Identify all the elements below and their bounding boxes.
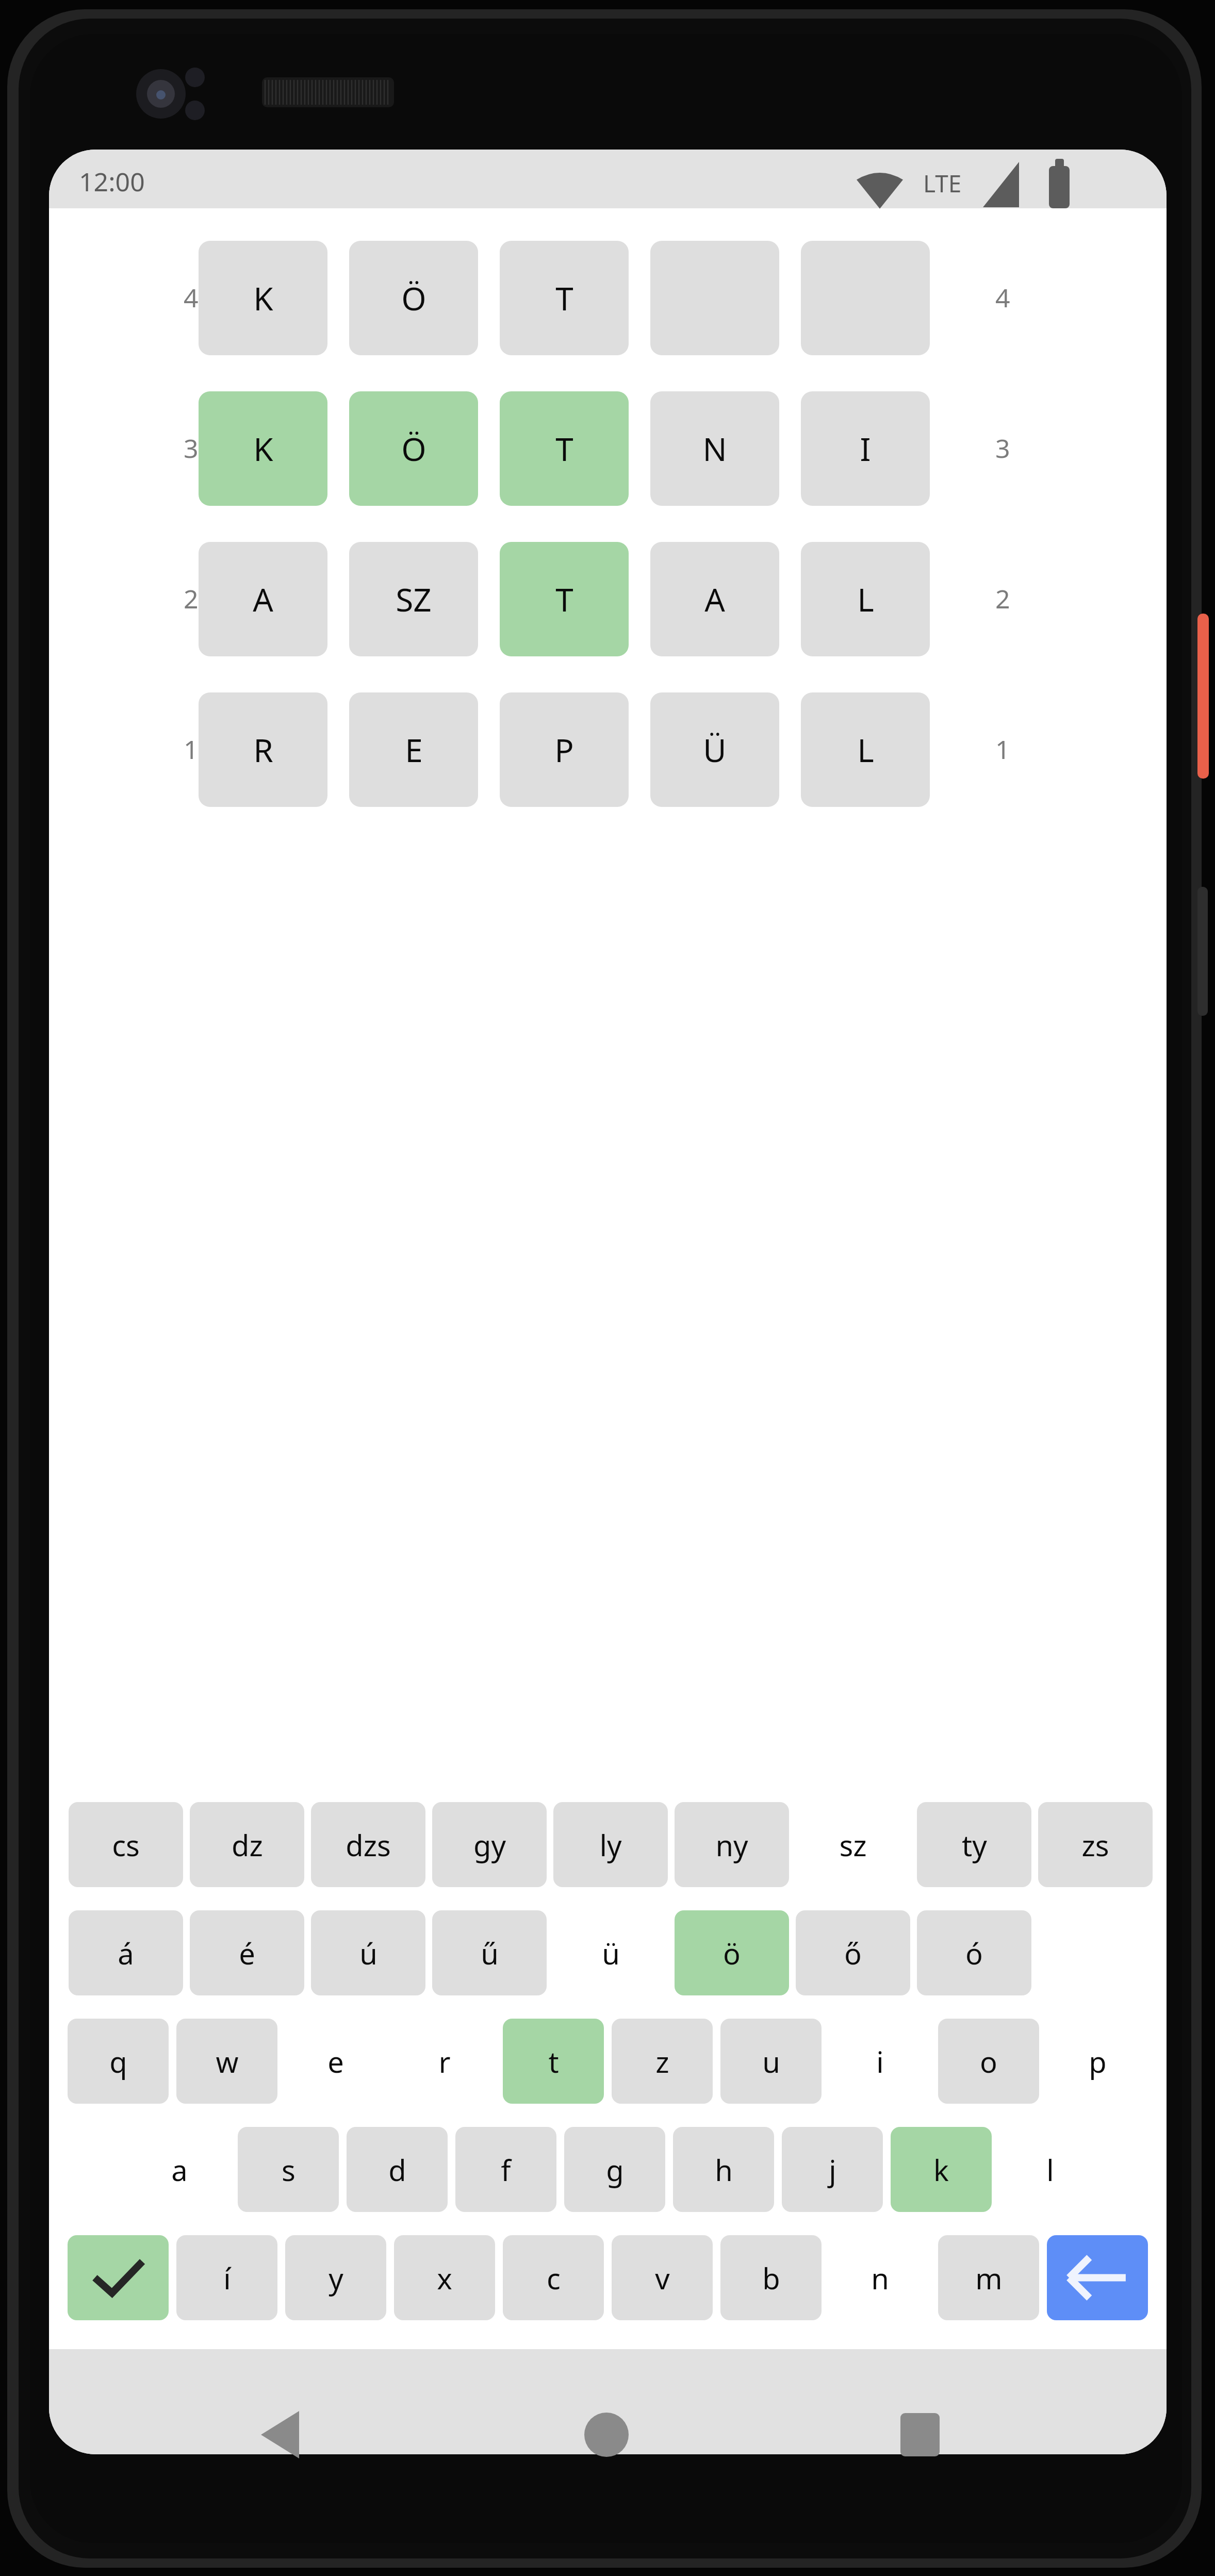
staticText: zs (1081, 1825, 1109, 1864)
button[interactable]: r (394, 2019, 495, 2104)
button[interactable]: h (673, 2127, 774, 2212)
button[interactable]: E (349, 692, 478, 807)
button[interactable]: ó (917, 1910, 1031, 1995)
staticText: á (118, 1934, 134, 1973)
button[interactable]: gy (432, 1802, 547, 1887)
button[interactable]: A (650, 542, 779, 656)
button[interactable]: n (829, 2235, 930, 2320)
staticText: T (555, 427, 573, 470)
staticText: A (253, 577, 273, 621)
button[interactable]: z (612, 2019, 713, 2104)
button[interactable]: ü (553, 1910, 668, 1995)
button[interactable]: R (199, 692, 327, 807)
button[interactable]: T (500, 542, 629, 656)
staticText: a (171, 2150, 188, 2189)
button[interactable]: K (199, 391, 327, 506)
button[interactable]: a (129, 2127, 230, 2212)
staticText: g (606, 2150, 624, 2189)
staticText: ly (599, 1825, 622, 1864)
button[interactable]: dz (190, 1802, 304, 1887)
staticText: P (554, 728, 574, 771)
button[interactable]: Ü (650, 692, 779, 807)
button[interactable]: m (938, 2235, 1039, 2320)
staticText: 12:00 (79, 164, 145, 199)
staticText: c (547, 2258, 561, 2298)
button[interactable]: s (238, 2127, 339, 2212)
button[interactable]: k (891, 2127, 992, 2212)
button[interactable]: i (829, 2019, 930, 2104)
button[interactable]: f (455, 2127, 556, 2212)
button[interactable]: q (68, 2019, 169, 2104)
button[interactable]: t (503, 2019, 604, 2104)
button[interactable]: í (176, 2235, 277, 2320)
button[interactable]: o (938, 2019, 1039, 2104)
button[interactable]: d (347, 2127, 448, 2212)
button[interactable]: Backspace (1047, 2235, 1148, 2320)
button[interactable]: L (801, 692, 930, 807)
staticText: w (216, 2042, 239, 2081)
staticText: ő (844, 1934, 862, 1973)
button[interactable] (650, 241, 779, 355)
staticText: p (1089, 2042, 1107, 2081)
button[interactable]: c (503, 2235, 604, 2320)
button[interactable]: zs (1038, 1802, 1153, 1887)
button[interactable]: v (612, 2235, 713, 2320)
button[interactable]: K (199, 241, 327, 355)
button[interactable]: sz (796, 1802, 910, 1887)
button[interactable]: á (69, 1910, 183, 1995)
button[interactable]: j (782, 2127, 883, 2212)
staticText: ú (359, 1934, 377, 1973)
staticText: 1 (184, 732, 199, 767)
button[interactable]: cs (69, 1802, 183, 1887)
button[interactable]: Ö (349, 391, 478, 506)
staticText: sz (839, 1825, 867, 1864)
button[interactable]: Enter (68, 2235, 169, 2320)
button[interactable]: b (720, 2235, 822, 2320)
staticText: l (1046, 2150, 1054, 2189)
staticText: n (871, 2258, 889, 2298)
button[interactable]: P (500, 692, 629, 807)
button[interactable]: y (285, 2235, 386, 2320)
staticText: y (329, 2258, 343, 2298)
button[interactable]: SZ (349, 542, 478, 656)
staticText: h (715, 2150, 733, 2189)
staticText: Ö (401, 427, 426, 470)
staticText: í (223, 2258, 231, 2298)
button[interactable]: ö (675, 1910, 789, 1995)
button[interactable]: ő (796, 1910, 910, 1995)
button[interactable]: Back (223, 2382, 336, 2485)
staticText: k (933, 2150, 949, 2189)
button[interactable]: L (801, 542, 930, 656)
staticText: T (555, 577, 573, 621)
button[interactable]: u (720, 2019, 822, 2104)
button[interactable]: e (285, 2019, 386, 2104)
staticText: u (762, 2042, 780, 2081)
button[interactable]: w (176, 2019, 277, 2104)
button[interactable]: I (801, 391, 930, 506)
button[interactable]: T (500, 241, 629, 355)
button[interactable]: é (190, 1910, 304, 1995)
button[interactable]: Ö (349, 241, 478, 355)
staticText: 4 (184, 280, 199, 315)
button[interactable]: ty (917, 1802, 1031, 1887)
button[interactable]: T (500, 391, 629, 506)
button[interactable]: p (1047, 2019, 1148, 2104)
button[interactable]: Home (550, 2382, 663, 2485)
button[interactable]: Recent apps (864, 2382, 978, 2485)
staticText: d (388, 2150, 406, 2189)
button[interactable]: A (199, 542, 327, 656)
staticText: 2 (995, 581, 1010, 616)
button[interactable]: ly (553, 1802, 668, 1887)
staticText: K (253, 276, 273, 320)
button[interactable]: l (999, 2127, 1101, 2212)
staticText: T (555, 276, 573, 320)
button[interactable]: g (564, 2127, 665, 2212)
button[interactable]: ű (432, 1910, 547, 1995)
button[interactable]: dzs (311, 1802, 425, 1887)
button[interactable]: x (394, 2235, 495, 2320)
staticText: 1 (995, 732, 1010, 767)
button[interactable]: N (650, 391, 779, 506)
button[interactable]: ny (675, 1802, 789, 1887)
button[interactable]: ú (311, 1910, 425, 1995)
